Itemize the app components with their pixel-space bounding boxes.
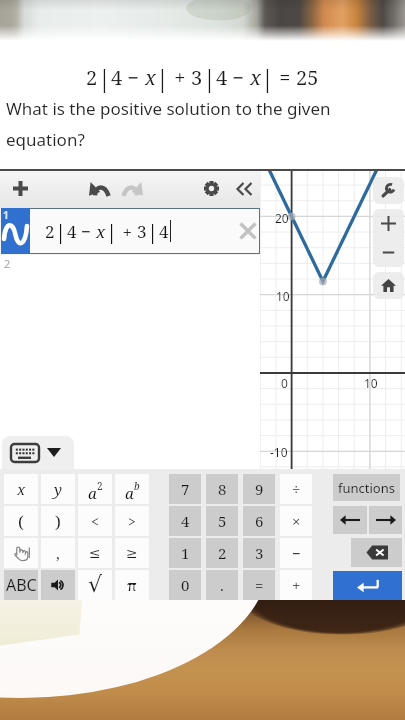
button[interactable]: Zoom out xyxy=(373,238,404,267)
staticText: x xyxy=(96,220,106,243)
button[interactable]: 4 xyxy=(169,506,201,536)
button[interactable]: functions xyxy=(333,474,400,501)
button[interactable]: < xyxy=(78,506,112,536)
staticText: x xyxy=(250,64,261,91)
button[interactable]: a xyxy=(115,474,149,504)
button[interactable]: 2 xyxy=(206,538,238,568)
staticText: -10 xyxy=(270,444,288,460)
staticText: , xyxy=(56,543,60,563)
staticText: 1 xyxy=(181,543,190,563)
button[interactable]: 6 xyxy=(243,506,275,536)
staticText: What is the positive solution to the giv… xyxy=(6,97,392,151)
staticText: 25 xyxy=(296,64,319,91)
button[interactable]: Settings xyxy=(197,169,225,208)
button[interactable]: × xyxy=(280,506,312,536)
button[interactable]: 8 xyxy=(206,474,238,504)
staticText: 7 xyxy=(181,479,190,499)
button[interactable]: Collapse panel xyxy=(230,169,260,208)
staticText: 4 xyxy=(181,511,190,531)
button[interactable] xyxy=(369,506,402,534)
button[interactable]: ) xyxy=(41,506,75,536)
button[interactable]: ( xyxy=(4,506,38,536)
staticText: √ xyxy=(88,572,103,598)
button[interactable]: 3 xyxy=(243,538,275,568)
staticText: 4 − xyxy=(111,64,145,91)
staticText: 1 xyxy=(3,208,9,222)
button[interactable]: 0 xyxy=(169,570,201,600)
staticText: − xyxy=(292,543,301,563)
staticText: ABC xyxy=(6,574,37,596)
button[interactable]: Graph settings xyxy=(373,177,404,204)
button[interactable]: 1 xyxy=(169,538,201,568)
button[interactable]: − xyxy=(280,538,312,568)
staticText: 2 xyxy=(4,256,11,271)
button[interactable]: , xyxy=(41,538,75,568)
staticText: 9 xyxy=(255,479,264,499)
staticText: | xyxy=(156,62,169,93)
staticText: b xyxy=(134,479,140,493)
button[interactable] xyxy=(41,570,75,600)
button[interactable]: Reset zoom xyxy=(373,272,404,299)
button[interactable]: . xyxy=(206,570,238,600)
staticText: | xyxy=(55,218,67,245)
button[interactable]: Zoom in xyxy=(373,209,404,238)
button[interactable]: > xyxy=(115,506,149,536)
staticText: | xyxy=(147,218,159,245)
staticText: 2 xyxy=(97,479,103,493)
button[interactable]: π xyxy=(115,570,149,600)
staticText: 3 xyxy=(137,220,147,243)
button[interactable] xyxy=(333,571,402,600)
button[interactable] xyxy=(351,538,402,567)
button[interactable]: ≥ xyxy=(115,538,149,568)
staticText: x xyxy=(17,479,26,499)
staticText: ÷ xyxy=(292,479,301,499)
button[interactable]: ABC xyxy=(4,570,38,600)
button[interactable]: a xyxy=(78,474,112,504)
staticText: 4 − xyxy=(216,64,250,91)
staticText: > xyxy=(128,512,136,531)
staticText: + xyxy=(292,575,301,595)
button[interactable]: √ xyxy=(78,570,112,600)
staticText: × xyxy=(292,511,301,531)
staticText: y xyxy=(54,479,62,499)
button[interactable]: 5 xyxy=(206,506,238,536)
staticText: 0 xyxy=(181,575,190,595)
staticText: ≤ xyxy=(89,545,101,561)
staticText: 8 xyxy=(218,479,227,499)
button[interactable]: Add expression xyxy=(5,169,35,208)
button[interactable]: Expression 1 color xyxy=(1,208,30,254)
staticText: | xyxy=(203,62,216,93)
button[interactable]: Undo xyxy=(82,169,116,208)
button[interactable]: y xyxy=(41,474,75,504)
button[interactable]: 9 xyxy=(243,474,275,504)
button[interactable] xyxy=(333,506,367,534)
button[interactable]: Delete expression xyxy=(238,221,258,241)
staticText: = xyxy=(274,64,296,91)
staticText: + xyxy=(169,64,191,91)
staticText: 5 xyxy=(218,511,227,531)
button[interactable]: + xyxy=(280,570,312,600)
button[interactable]: ÷ xyxy=(280,474,312,504)
staticText: 3 xyxy=(191,64,203,91)
staticText: 20 xyxy=(275,210,289,226)
staticText: functions xyxy=(338,479,395,497)
button[interactable]: 7 xyxy=(169,474,201,504)
staticText: 2 xyxy=(45,220,55,243)
staticText: π xyxy=(127,575,137,595)
button[interactable]: ≤ xyxy=(78,538,112,568)
staticText: | xyxy=(106,218,118,245)
button[interactable]: = xyxy=(243,570,275,600)
button[interactable]: Redo xyxy=(116,169,150,208)
staticText: | xyxy=(98,62,111,93)
button[interactable]: x xyxy=(4,474,38,504)
staticText: x xyxy=(145,64,156,91)
button[interactable] xyxy=(4,538,38,568)
staticText: ≥ xyxy=(126,545,138,561)
staticText: a xyxy=(88,483,97,503)
staticText: a xyxy=(125,483,134,503)
staticText: < xyxy=(91,512,99,531)
staticText: | xyxy=(261,62,274,93)
staticText: 2 xyxy=(86,64,98,91)
staticText: 4 − xyxy=(67,220,96,243)
button[interactable]: Keyboard xyxy=(2,436,74,469)
